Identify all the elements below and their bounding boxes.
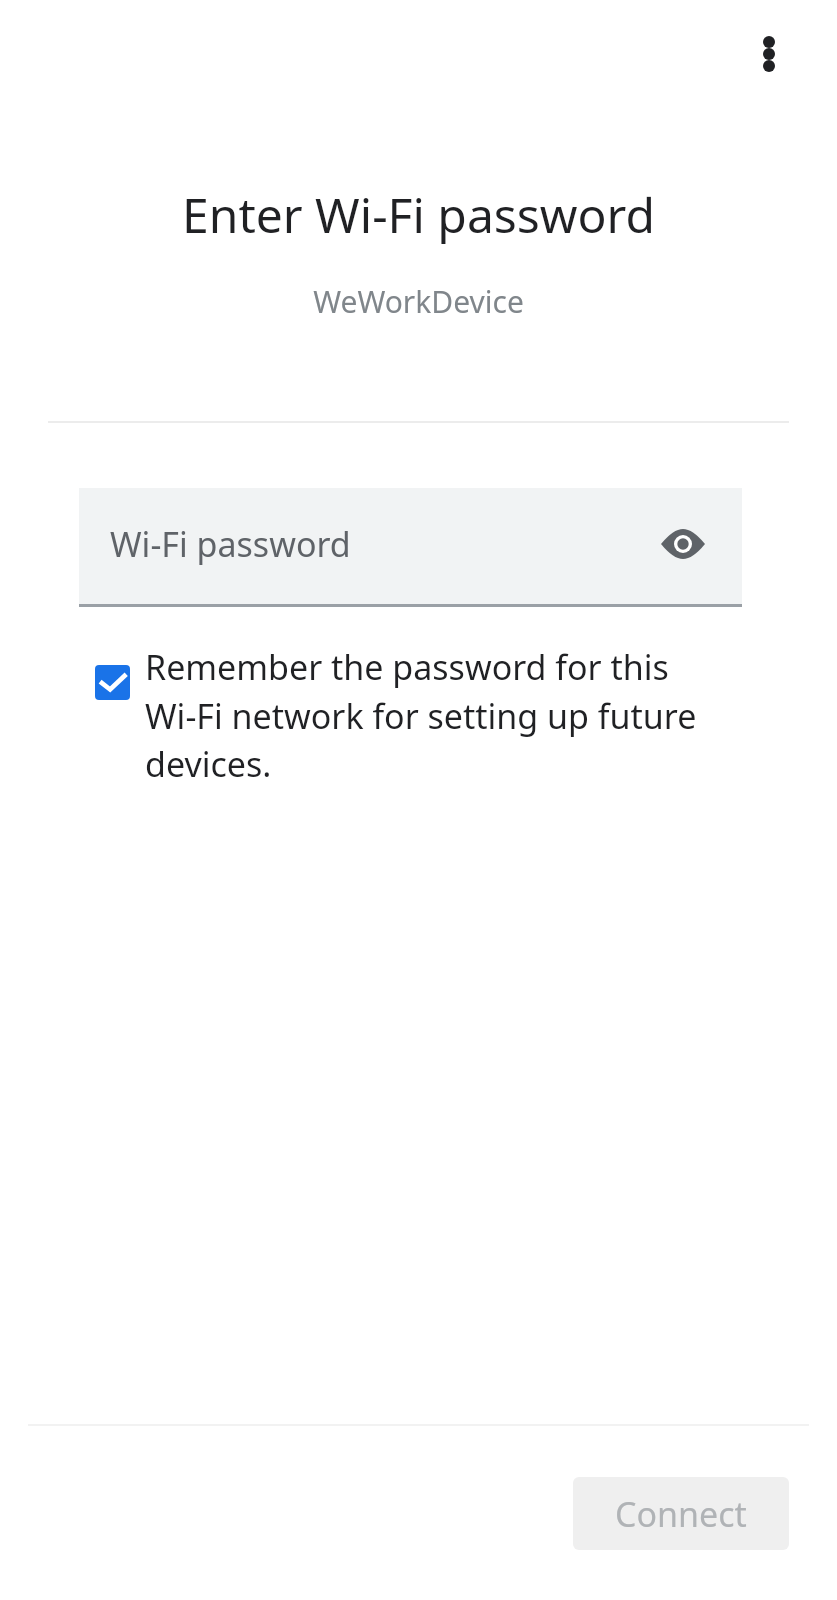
button[interactable]: Connect: [573, 1477, 789, 1550]
button[interactable]: More options: [745, 20, 793, 88]
staticText: Remember the password for this Wi-Fi net…: [145, 644, 699, 787]
staticText: Connect: [615, 1491, 747, 1537]
staticText: Enter Wi-Fi password: [0, 182, 837, 247]
staticText: WeWorkDevice: [0, 281, 837, 322]
button[interactable]: Wi-Fi password: [79, 488, 742, 607]
button[interactable]: Show password: [651, 512, 715, 576]
staticText: Wi-Fi password: [110, 521, 351, 567]
button[interactable]: Remember the password for this Wi-Fi net…: [79, 640, 715, 783]
